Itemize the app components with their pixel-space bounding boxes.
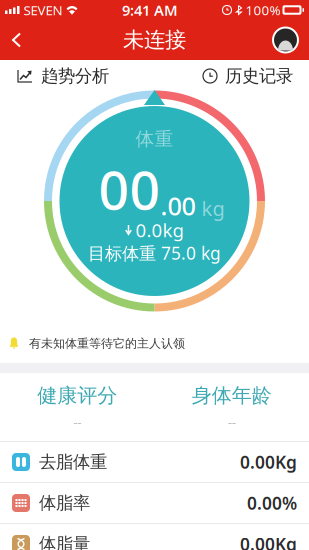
button[interactable]: 有未知体重等待它的主人认领 [0,324,309,363]
staticText: .00 [160,189,195,222]
staticText: 00 [98,154,160,224]
staticText: 0.00Kg [240,450,297,473]
staticText: 未连接 [123,27,186,53]
staticText: SEVEN [23,1,62,19]
staticText: 有未知体重等待它的主人认领 [29,336,185,351]
button[interactable]: 用户头像 [258,20,309,59]
staticText: 健康评分 [37,383,117,408]
staticText: 去脂体重 [39,451,107,473]
button[interactable]: 健康评分 [0,373,154,441]
staticText: 0.00Kg [240,532,297,550]
staticText: -- [228,413,236,431]
staticText: 0.0kg [135,218,183,242]
staticText: 身体年龄 [192,383,272,408]
staticText: kg [201,195,224,221]
staticText: 体重 [135,127,173,150]
staticText: -- [73,413,81,431]
button[interactable]: 返回 [0,21,38,59]
staticText: 100% [245,1,280,19]
staticText: 体脂量 [39,533,90,550]
staticText: 目标体重 75.0 kg [88,241,221,264]
button[interactable]: 历史记录 [193,62,309,90]
staticText: 历史记录 [225,65,293,87]
staticText: 体脂率 [39,492,90,514]
staticText: 9:41 AM [122,0,178,20]
button[interactable]: 趋势分析 [0,62,119,90]
button[interactable]: 去脂体重 [0,442,309,482]
button[interactable]: 体脂量 [0,524,309,550]
staticText: 趋势分析 [41,65,109,87]
staticText: 0.00% [247,491,297,514]
button[interactable]: 体脂率 [0,483,309,523]
button[interactable]: 身体年龄 [154,373,309,441]
